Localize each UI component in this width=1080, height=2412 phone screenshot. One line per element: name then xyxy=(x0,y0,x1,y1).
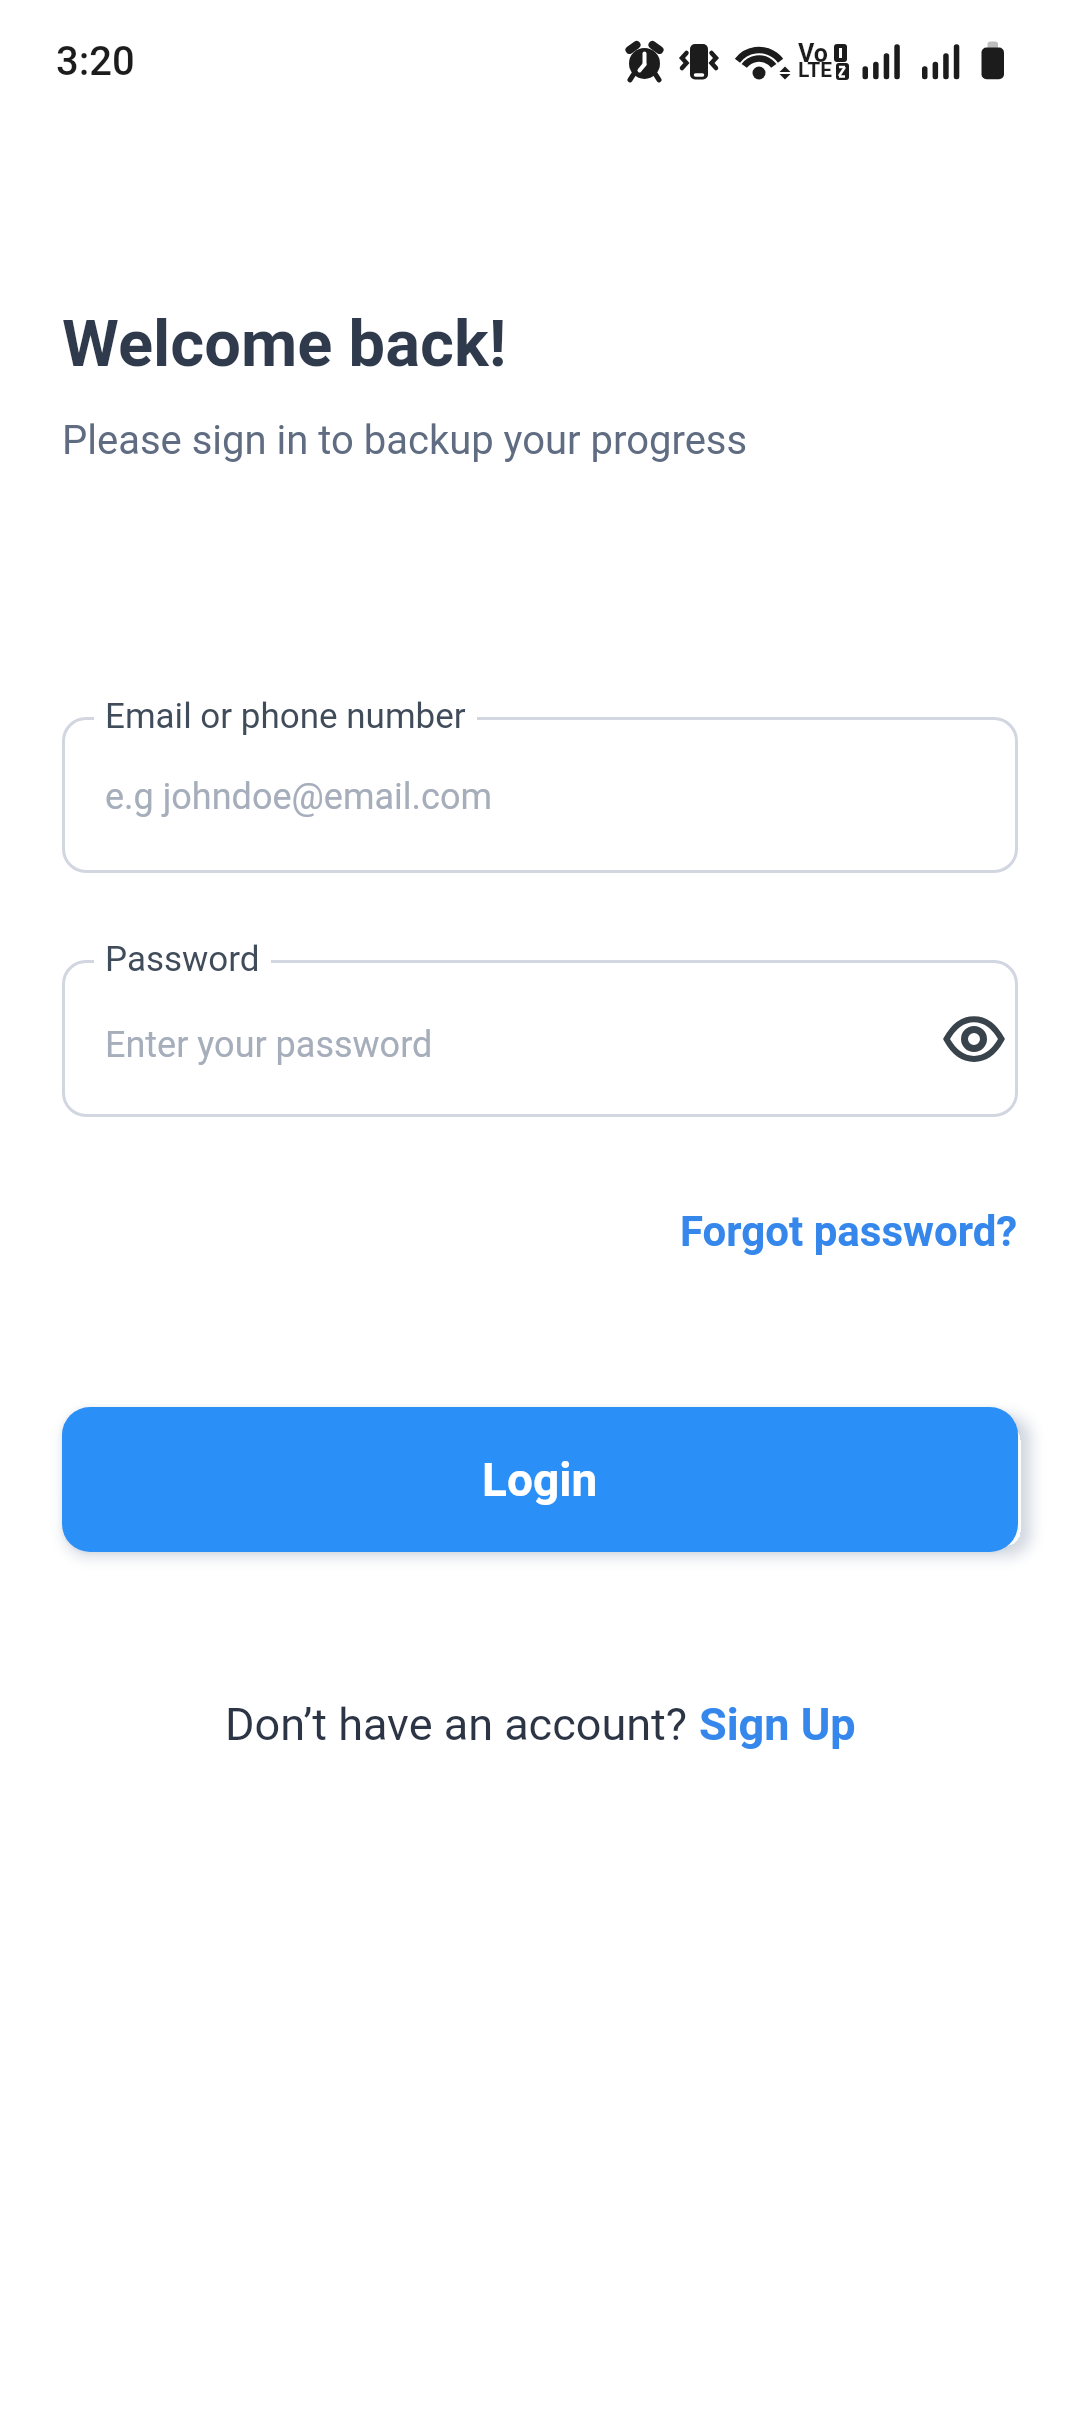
staticText: Enter your password xyxy=(105,1024,433,1066)
staticText: 3:20 xyxy=(56,38,135,85)
staticText: Please sign in to backup your progress xyxy=(62,417,748,464)
button[interactable] xyxy=(945,1017,1003,1061)
button[interactable]: Forgot password? xyxy=(680,1207,1018,1256)
staticText: Password xyxy=(105,939,260,980)
button[interactable] xyxy=(62,717,1018,873)
staticText: e.g johndoe@email.com xyxy=(105,776,493,818)
button[interactable]: Login xyxy=(62,1407,1018,1552)
staticText: Login xyxy=(482,1453,598,1507)
button[interactable]: Sign Up xyxy=(699,1698,856,1751)
staticText: Don’t have an account? xyxy=(225,1698,699,1751)
staticText: Email or phone number xyxy=(105,696,466,737)
button[interactable] xyxy=(62,960,1018,1117)
staticText: Welcome back! xyxy=(62,306,507,382)
staticText: Vo xyxy=(798,39,828,68)
staticText: LTE xyxy=(798,58,833,83)
